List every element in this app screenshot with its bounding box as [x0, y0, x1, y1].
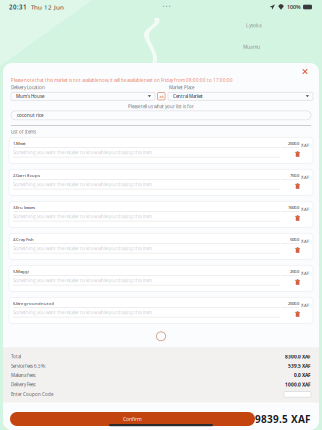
staticText: Something you want the retailer to know …: [13, 246, 152, 252]
staticText: 750.0: [290, 173, 299, 178]
staticText: Delivery Location: [11, 85, 45, 91]
staticText: Something you want the retailer to know …: [13, 278, 152, 284]
button[interactable]: Mum's House: [11, 92, 155, 100]
staticText: XAF: [301, 270, 309, 276]
staticText: XAF: [301, 174, 309, 180]
staticText: 8300.0 XAF: [285, 353, 311, 360]
staticText: Service fees 6.5%:: [11, 363, 46, 369]
button[interactable]: Delete 1.Meat: [295, 151, 300, 157]
staticText: 0.0 XAF: [294, 372, 311, 378]
staticText: 6.litre groundnut oil: [13, 301, 54, 306]
button[interactable]: Delete 4.Cray Fish: [295, 247, 300, 253]
staticText: 2500.0: [288, 301, 299, 306]
button[interactable]: Delete 2.Garri 8 cups: [295, 183, 300, 189]
staticText: Makana fees:: [11, 372, 36, 378]
staticText: Thu 12 Jun: [31, 3, 64, 11]
staticText: 3.Eru leaves: [13, 205, 35, 210]
staticText: Confirm: [123, 415, 142, 422]
staticText: XAF: [301, 238, 309, 244]
staticText: • • •: [163, 4, 171, 10]
button[interactable]: Pick on map: [157, 92, 165, 100]
staticText: 20:31: [9, 3, 27, 11]
staticText: 9839.5 XAF: [255, 412, 310, 426]
staticText: 5.Maggi: [13, 269, 29, 274]
staticText: XAF: [301, 142, 309, 148]
staticText: Delivery Fees:: [11, 382, 36, 388]
staticText: Central Market: [173, 93, 203, 99]
staticText: 250.0: [290, 269, 299, 274]
staticText: Something you want the retailer to know …: [13, 150, 152, 156]
button[interactable]: Add item: [156, 332, 165, 341]
staticText: Muamu: [243, 43, 260, 50]
button[interactable]: Coupon code: [284, 392, 311, 397]
staticText: 1600.0: [288, 205, 299, 210]
staticText: List of Items: [11, 129, 36, 135]
button[interactable]: Confirm: [10, 412, 255, 426]
staticText: Market Place: [169, 85, 194, 91]
staticText: Please note that this market is not avai…: [11, 77, 233, 83]
button[interactable]: Delete 3.Eru leaves: [295, 215, 300, 221]
button[interactable]: Delete 6.litre groundnut oil: [295, 311, 300, 317]
staticText: 2500.0: [288, 141, 299, 146]
staticText: 2.Garri 8 cups: [13, 173, 40, 178]
staticText: Lysoka: [246, 22, 262, 28]
button[interactable]: Delete 5.Maggi: [295, 279, 300, 285]
staticText: 539.5 XAF: [288, 363, 311, 369]
staticText: Something you want the retailer to know …: [13, 182, 152, 188]
staticText: 500.0: [290, 237, 299, 242]
staticText: XAF: [301, 302, 309, 308]
staticText: Something you want the retailer to know …: [13, 214, 152, 220]
button[interactable]: Central Market: [168, 92, 313, 100]
staticText: 100%: [287, 3, 301, 11]
staticText: Total: [11, 354, 21, 360]
staticText: Enter Coupon Code: [11, 391, 53, 397]
staticText: Please tell us what your list is for: [128, 103, 194, 109]
staticText: 4.Cray Fish: [13, 237, 34, 242]
staticText: 1000.0 XAF: [285, 381, 311, 388]
staticText: Mum's House: [16, 93, 44, 99]
staticText: Something you want the retailer to know …: [13, 310, 152, 316]
staticText: XAF: [301, 206, 309, 212]
staticText: coconut rice: [17, 112, 43, 118]
button[interactable]: Close: [299, 66, 310, 77]
staticText: 1.Meat: [13, 141, 25, 146]
